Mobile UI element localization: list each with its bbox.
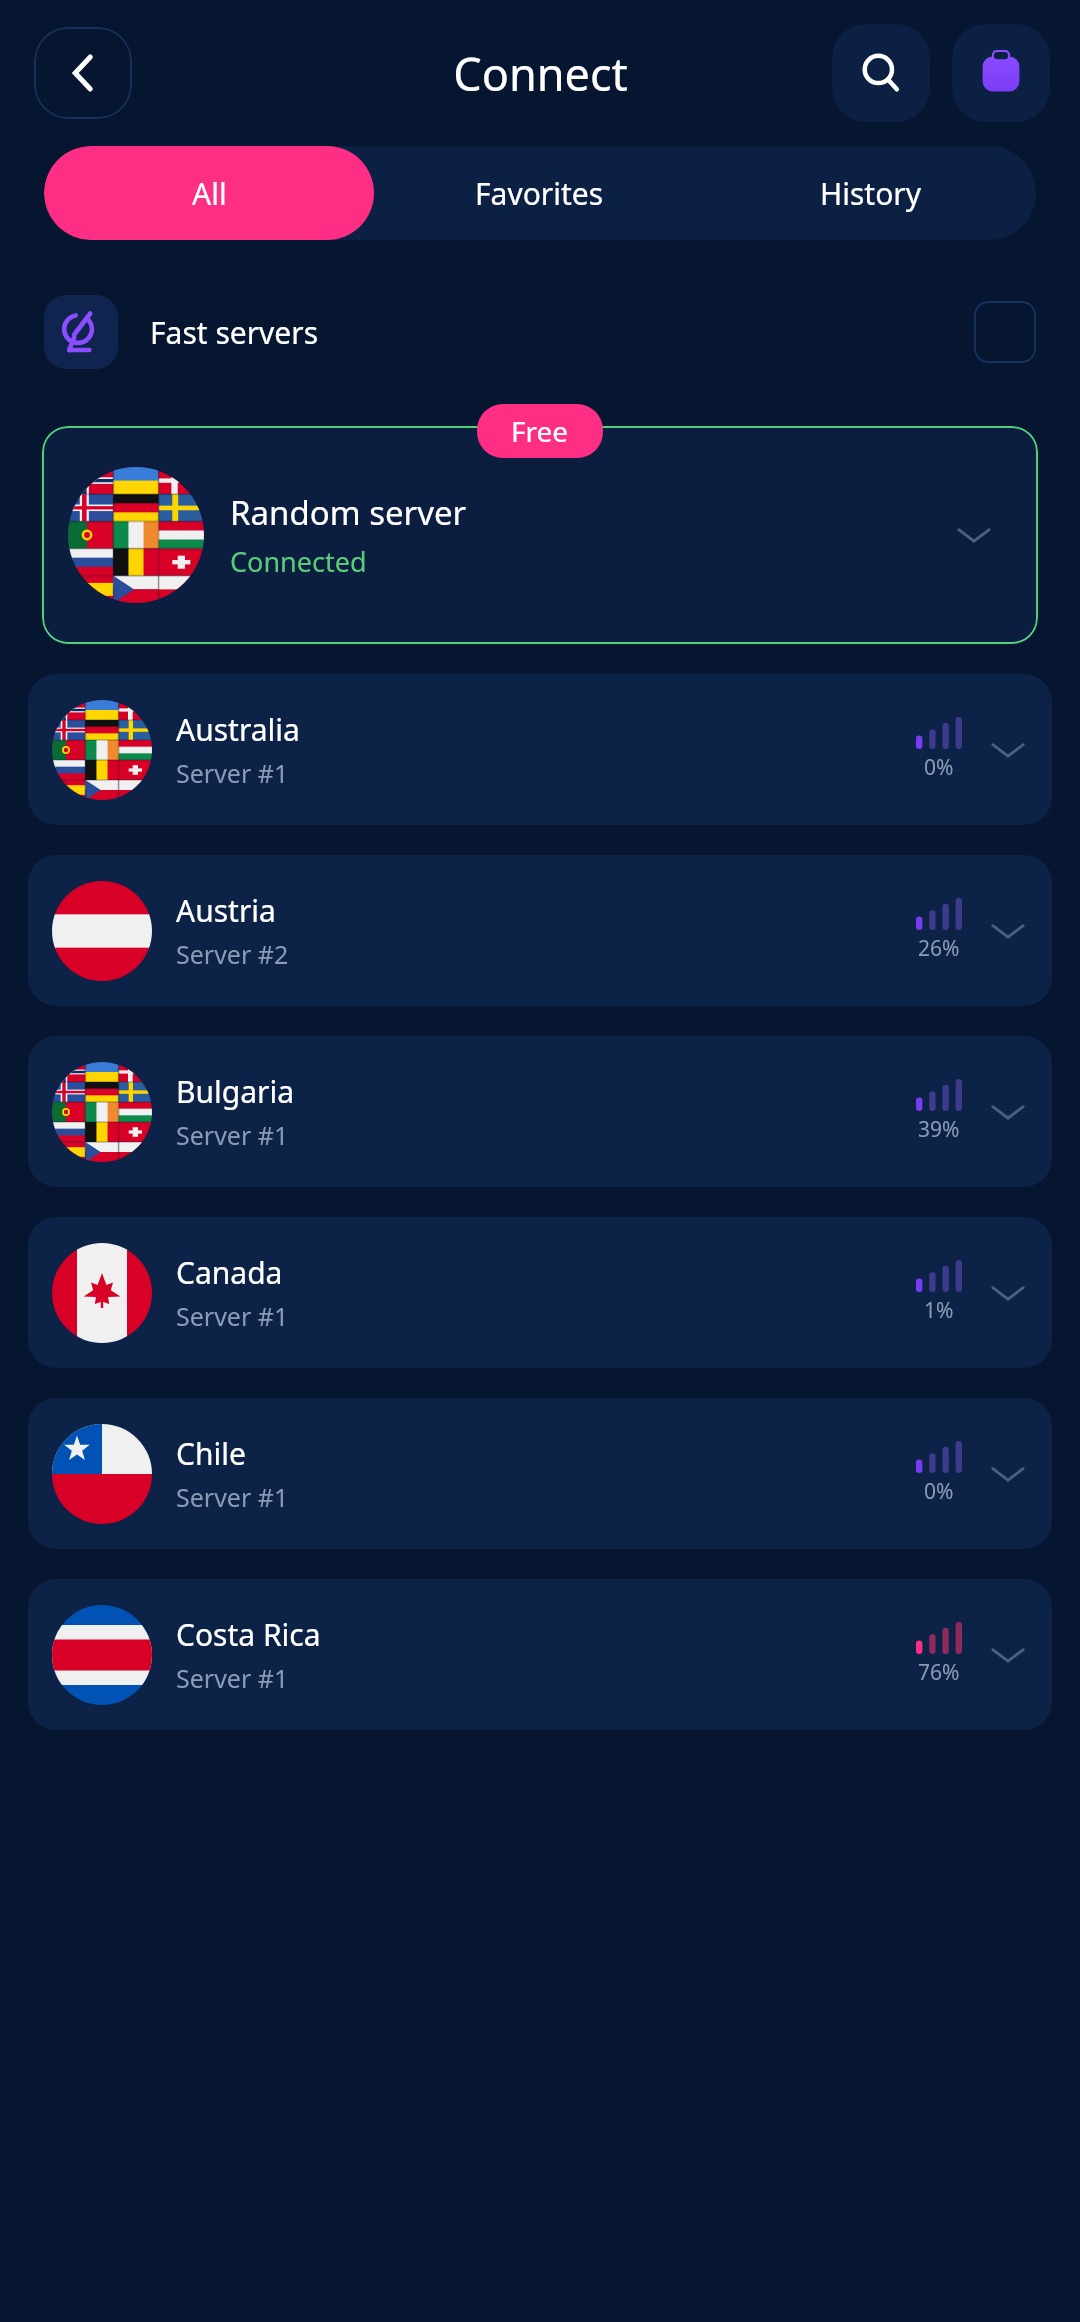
button[interactable]: Australia (28, 674, 1052, 825)
staticText: Server #1 (176, 756, 289, 790)
staticText: Chile (176, 1433, 246, 1474)
button[interactable]: Search (832, 24, 930, 122)
button[interactable]: Free (511, 412, 569, 450)
button[interactable]: Chile (28, 1398, 1052, 1549)
staticText: Costa Rica (176, 1614, 321, 1655)
staticText: Bulgaria (176, 1071, 295, 1112)
staticText: Server #1 (176, 1661, 289, 1695)
button[interactable]: Costa Rica (28, 1579, 1052, 1730)
staticText: Connect (453, 43, 628, 104)
staticText: 39% (918, 1115, 960, 1144)
button[interactable]: Back (34, 27, 132, 119)
staticText: Austria (176, 890, 276, 931)
staticText: Random server (230, 490, 467, 535)
button[interactable]: History (705, 146, 1036, 240)
staticText: Free (511, 412, 569, 450)
button[interactable]: Clipboard (952, 24, 1050, 122)
staticText: 1% (924, 1296, 954, 1325)
staticText: Fast servers (150, 312, 318, 353)
staticText: Connected (230, 543, 367, 580)
staticText: Favorites (475, 173, 604, 214)
staticText: Australia (176, 709, 300, 750)
staticText: Server #1 (176, 1299, 289, 1333)
staticText: 0% (924, 1477, 954, 1506)
staticText: Server #2 (176, 937, 289, 971)
button[interactable]: Random server (42, 426, 1038, 644)
staticText: Canada (176, 1252, 283, 1293)
button[interactable]: Select fast servers (974, 301, 1036, 363)
button[interactable]: Favorites (374, 146, 705, 240)
button[interactable]: Canada (28, 1217, 1052, 1368)
button[interactable]: Fast servers (44, 288, 1036, 376)
staticText: 26% (918, 934, 960, 963)
staticText: Server #1 (176, 1118, 289, 1152)
button[interactable]: Austria (28, 855, 1052, 1006)
staticText: Server #1 (176, 1480, 289, 1514)
staticText: All (192, 173, 227, 214)
button[interactable]: Bulgaria (28, 1036, 1052, 1187)
button[interactable]: All (44, 146, 374, 240)
staticText: History (820, 173, 922, 214)
staticText: 76% (918, 1658, 960, 1687)
staticText: 0% (924, 753, 954, 782)
